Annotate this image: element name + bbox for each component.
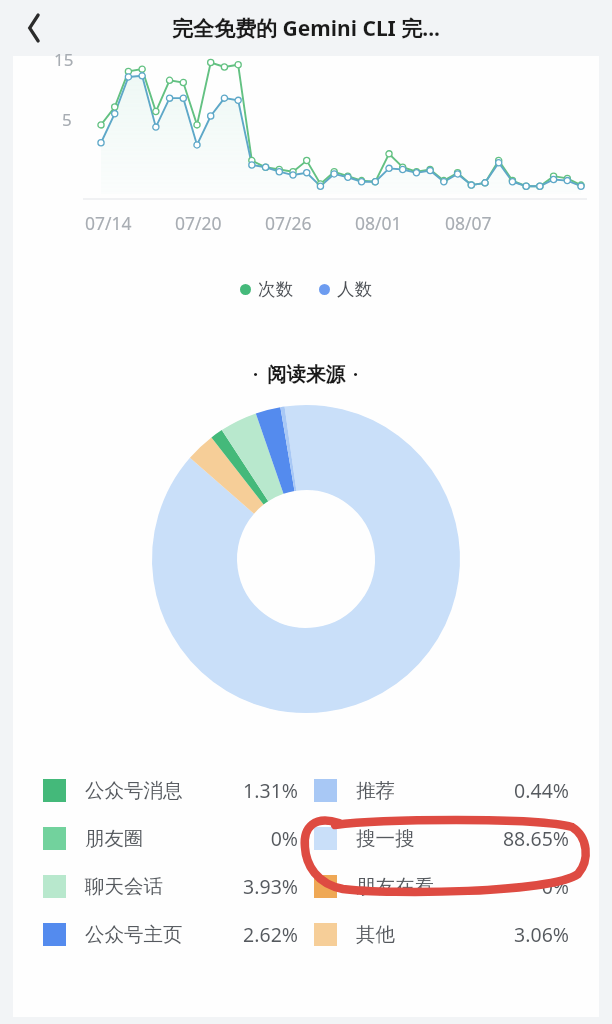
staticText: 08/01 xyxy=(355,211,402,235)
staticText: 5 xyxy=(62,108,72,131)
staticText: 人数 xyxy=(337,278,372,300)
staticText: 2.62% xyxy=(243,921,298,948)
staticText: · xyxy=(353,362,359,387)
staticText: 其他 xyxy=(356,922,395,947)
staticText: 推荐 xyxy=(356,778,395,803)
staticText: 15 xyxy=(54,48,74,71)
staticText: 0% xyxy=(270,825,298,852)
staticText: 朋友在看 xyxy=(356,874,434,899)
button[interactable]: 朋友圈 xyxy=(43,825,298,852)
staticText: 聊天会话 xyxy=(85,874,163,899)
button[interactable]: 人数 xyxy=(319,278,372,300)
staticText: 阅读来源 xyxy=(267,362,345,387)
staticText: 次数 xyxy=(258,278,293,300)
staticText: 08/07 xyxy=(445,211,492,235)
staticText: 07/20 xyxy=(175,211,222,235)
staticText: 3.06% xyxy=(514,921,569,948)
button[interactable]: 公众号主页 xyxy=(43,921,298,948)
button[interactable]: 朋友在看 xyxy=(314,873,569,900)
button[interactable]: 其他 xyxy=(314,921,569,948)
staticText: · xyxy=(253,362,259,387)
button[interactable]: 推荐 xyxy=(314,777,569,804)
button[interactable]: Back xyxy=(10,5,56,51)
staticText: 完全免费的 Gemini CLI 完... xyxy=(172,14,440,43)
button[interactable]: 公众号消息 xyxy=(43,777,298,804)
staticText: 07/26 xyxy=(265,211,312,235)
staticText: 0.44% xyxy=(514,777,569,804)
staticText: 朋友圈 xyxy=(85,826,144,851)
staticText: 07/14 xyxy=(85,211,132,235)
staticText: 公众号消息 xyxy=(85,778,183,803)
button[interactable]: 次数 xyxy=(240,278,293,300)
button[interactable]: 聊天会话 xyxy=(43,873,298,900)
staticText: 1.31% xyxy=(243,777,298,804)
staticText: 搜一搜 xyxy=(356,826,415,851)
staticText: 0% xyxy=(541,873,569,900)
staticText: 88.65% xyxy=(502,825,569,852)
staticText: 公众号主页 xyxy=(85,922,183,947)
staticText: 3.93% xyxy=(243,873,298,900)
button[interactable]: 搜一搜 xyxy=(314,825,569,852)
